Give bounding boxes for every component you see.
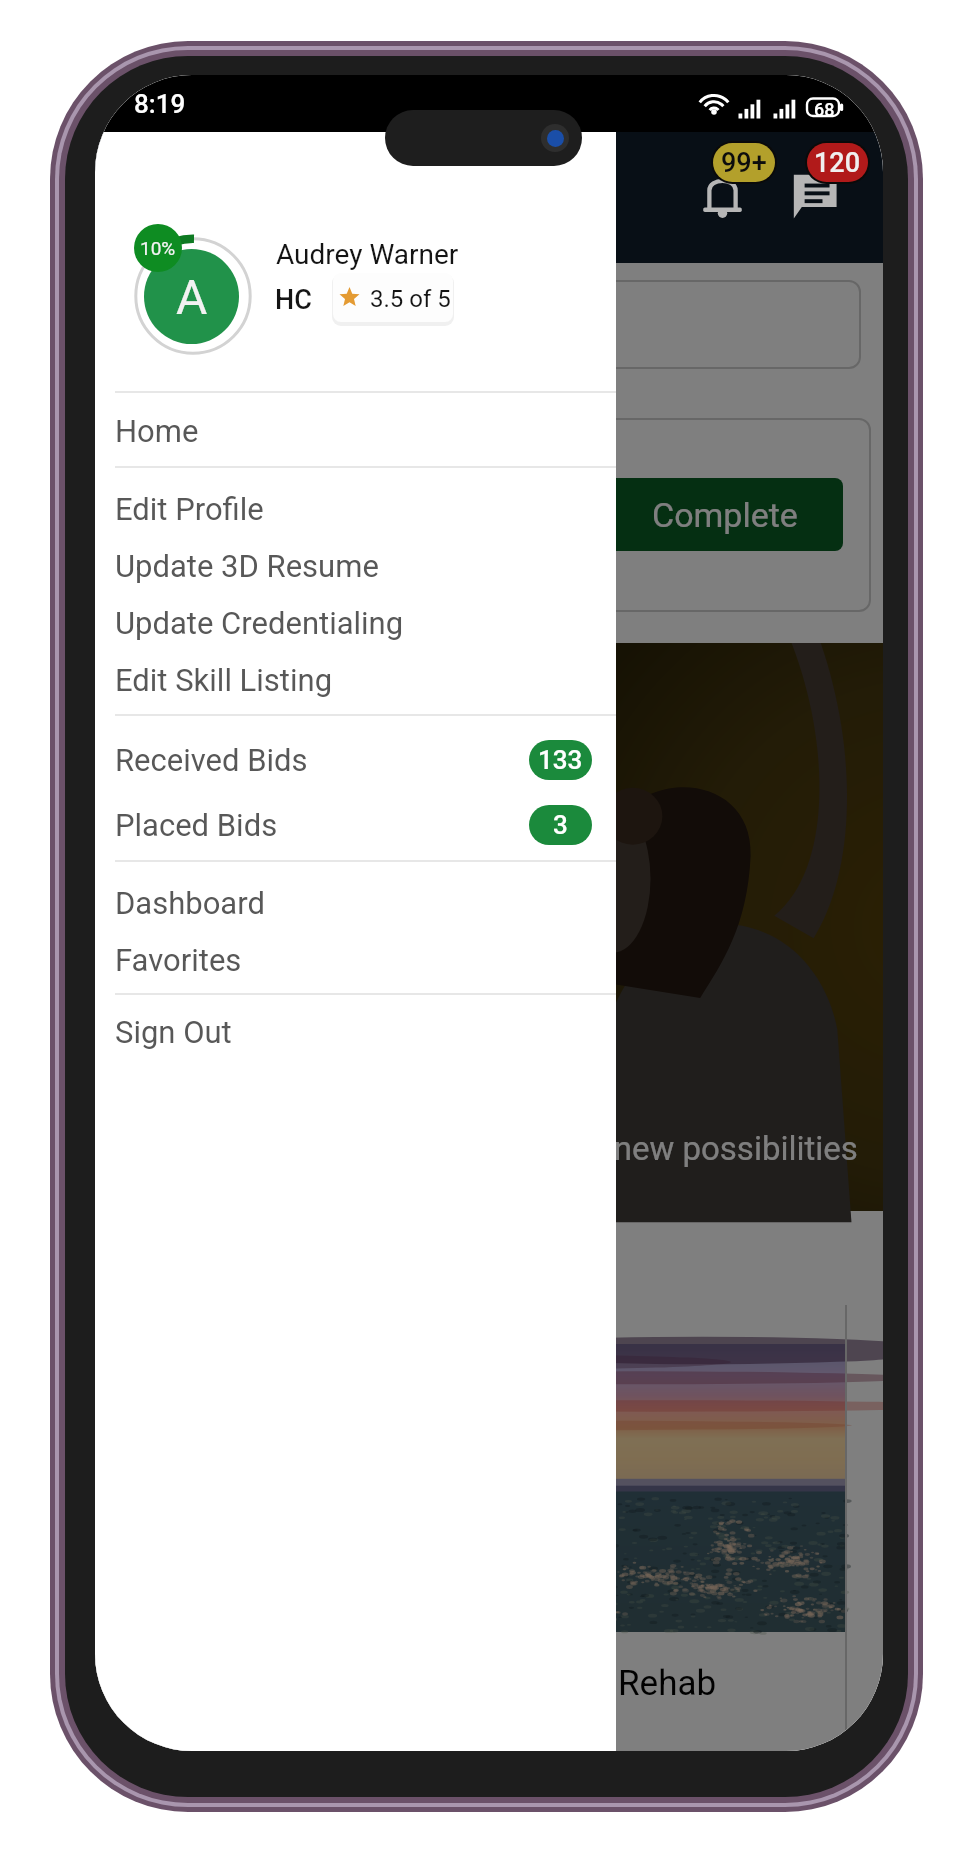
button[interactable]: Placed Bids — [95, 792, 616, 857]
button[interactable]: Update Credentialing — [95, 594, 616, 651]
staticText: Rehab — [618, 1663, 717, 1704]
staticText: Placed Bids — [115, 807, 278, 843]
staticText: 99+ — [721, 147, 767, 179]
staticText: Audrey Warner — [276, 238, 459, 271]
staticText: 3 — [553, 810, 568, 840]
staticText: Complete — [652, 495, 798, 535]
staticText: 10% — [140, 237, 176, 259]
staticText: 68 — [814, 99, 835, 120]
button[interactable]: Dashboard — [95, 874, 616, 931]
staticText: 3.5 of 5 — [370, 285, 451, 313]
button[interactable]: Complete — [607, 478, 843, 551]
button[interactable]: Edit Profile — [95, 480, 616, 537]
staticText: Unfolds new possibilities — [492, 1129, 858, 1168]
staticText: HC — [275, 284, 312, 316]
staticText: Edit Skill Listing — [115, 662, 333, 698]
button[interactable]: Received Bids — [95, 727, 616, 792]
staticText: Home — [115, 413, 199, 449]
button[interactable]: Favorites — [95, 931, 616, 988]
button[interactable]: 3.5 of 5 — [333, 273, 453, 322]
button[interactable]: Sign Out — [95, 1003, 616, 1060]
staticText: Edit Profile — [115, 491, 264, 527]
button[interactable]: Notifications — [702, 177, 743, 216]
staticText: Favorites — [115, 942, 242, 978]
button[interactable]: Messages — [791, 173, 838, 219]
staticText: 133 — [538, 745, 583, 775]
staticText: Dashboard — [115, 885, 265, 921]
staticText: Update 3D Resume — [115, 548, 379, 584]
staticText: 8:19 — [134, 89, 186, 119]
staticText: 120 — [814, 147, 861, 179]
staticText: Update Credentialing — [115, 605, 404, 641]
button[interactable]: Update 3D Resume — [95, 537, 616, 594]
button[interactable]: Home — [95, 394, 616, 467]
button[interactable]: Edit Skill Listing — [95, 651, 616, 708]
staticText: Received Bids — [115, 742, 308, 778]
staticText: Sign Out — [115, 1014, 232, 1050]
staticText: A — [176, 269, 208, 325]
